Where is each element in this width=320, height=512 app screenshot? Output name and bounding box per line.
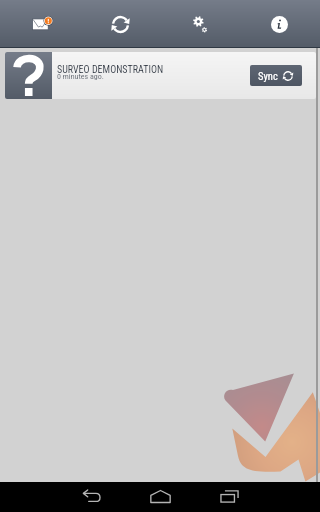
button[interactable]: Back bbox=[58, 481, 126, 511]
button[interactable]: Messages bbox=[0, 1, 80, 48]
button[interactable]: Info bbox=[240, 1, 320, 48]
button[interactable]: Sync bbox=[250, 65, 302, 86]
button[interactable]: SURVEO DEMONSTRATION bbox=[5, 52, 316, 99]
staticText: 0 minutes ago. bbox=[57, 72, 104, 81]
button[interactable]: Home bbox=[126, 481, 195, 511]
button[interactable]: Refresh bbox=[80, 1, 160, 48]
button[interactable]: Recent apps bbox=[195, 481, 264, 511]
button[interactable]: Settings bbox=[160, 1, 240, 48]
staticText: Sync bbox=[258, 70, 278, 82]
staticText: SURVEO DEMONSTRATION bbox=[57, 64, 164, 76]
